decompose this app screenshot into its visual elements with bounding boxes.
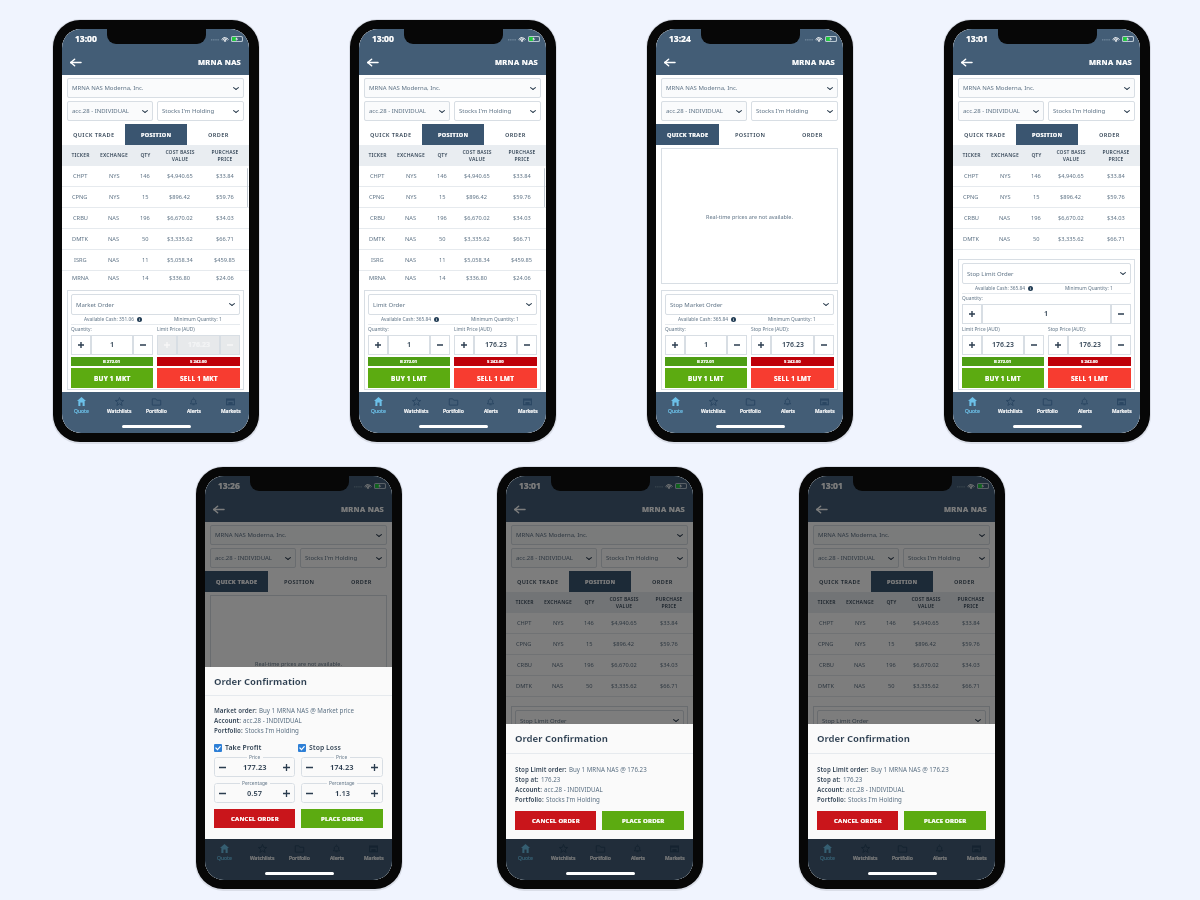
button[interactable]: Increase bbox=[300, 782, 320, 802]
button[interactable]: Increase Percentage bbox=[278, 783, 295, 803]
button[interactable]: Increase Percentage bbox=[366, 783, 383, 803]
button[interactable]: CANCEL ORDER bbox=[515, 811, 596, 830]
button[interactable]: Stocks I'm Holding bbox=[157, 101, 244, 121]
button[interactable]: CHPT bbox=[953, 166, 1140, 186]
button[interactable]: SELL 1 LMT bbox=[751, 368, 834, 388]
button[interactable]: CPNG bbox=[359, 187, 546, 207]
button[interactable]: CANCEL ORDER bbox=[817, 811, 898, 830]
button[interactable]: PLACE ORDER bbox=[602, 811, 684, 830]
button[interactable]: Watchlists bbox=[100, 392, 138, 433]
button[interactable]: Stocks I'm Holding bbox=[454, 101, 541, 121]
button[interactable]: MRNA NAS Moderna, Inc. bbox=[661, 78, 838, 98]
button[interactable]: PLACE ORDER bbox=[904, 811, 986, 830]
button[interactable]: POSITION bbox=[125, 124, 187, 145]
button[interactable]: MRNA NAS Moderna, Inc. bbox=[364, 78, 541, 98]
button[interactable]: Stop Limit Order bbox=[962, 263, 1131, 284]
button[interactable]: Decrease bbox=[1024, 335, 1044, 355]
button[interactable]: CPNG bbox=[62, 187, 249, 207]
button[interactable]: DMTK bbox=[808, 676, 995, 696]
button[interactable]: Alerts bbox=[318, 839, 355, 880]
button[interactable]: BUY 1 LMT bbox=[665, 368, 747, 388]
button[interactable]: POSITION bbox=[1016, 124, 1078, 145]
button[interactable]: CRBU bbox=[808, 655, 995, 675]
button[interactable]: Available cash info bbox=[581, 733, 586, 738]
button[interactable]: acc.28 - INDIVIDUAL bbox=[511, 548, 597, 568]
button[interactable]: Back bbox=[957, 53, 975, 71]
button[interactable]: CPNG bbox=[506, 634, 693, 654]
button[interactable]: acc.28 - INDIVIDUAL bbox=[210, 548, 296, 568]
button[interactable]: PLACE ORDER bbox=[301, 809, 383, 828]
button[interactable]: ORDER bbox=[631, 571, 693, 592]
button[interactable]: Back bbox=[812, 500, 830, 518]
button[interactable]: Increase bbox=[962, 335, 982, 355]
button[interactable]: Stop Limit Order bbox=[817, 710, 986, 731]
button[interactable]: Decrease bbox=[276, 782, 296, 802]
button[interactable]: QUICK TRADE bbox=[808, 571, 871, 592]
button[interactable]: ORDER bbox=[781, 124, 843, 145]
button[interactable]: Portfolio bbox=[1029, 392, 1066, 433]
button[interactable]: Increase bbox=[903, 782, 923, 802]
button[interactable]: MRNA NAS Moderna, Inc. bbox=[958, 78, 1135, 98]
button[interactable]: Decrease bbox=[517, 335, 537, 355]
button[interactable]: Increase bbox=[665, 335, 685, 355]
button[interactable]: CHPT bbox=[808, 613, 995, 633]
button[interactable]: Stop Loss bbox=[298, 743, 383, 752]
button[interactable]: Alerts bbox=[921, 839, 958, 880]
button[interactable]: SELL 1 LMT bbox=[1048, 368, 1131, 388]
button[interactable]: MRNA NAS Moderna, Inc. bbox=[210, 525, 387, 545]
button[interactable]: SELL 1 LMT bbox=[903, 815, 986, 835]
button[interactable]: Markets bbox=[656, 839, 693, 880]
button[interactable]: CHPT bbox=[359, 166, 546, 186]
button[interactable]: POSITION bbox=[719, 124, 781, 145]
button[interactable]: CRBU bbox=[359, 208, 546, 228]
button[interactable]: POSITION bbox=[569, 571, 631, 592]
button[interactable]: Decrease Price bbox=[301, 757, 318, 777]
button[interactable]: DMTK bbox=[506, 676, 693, 696]
button[interactable]: Markets bbox=[958, 839, 995, 880]
button[interactable]: Decrease bbox=[430, 335, 450, 355]
button[interactable]: Stocks I'm Holding bbox=[601, 548, 688, 568]
button[interactable]: Increase bbox=[368, 335, 388, 355]
button[interactable]: ISRG bbox=[359, 250, 546, 270]
button[interactable]: Alerts bbox=[769, 392, 806, 433]
button[interactable]: Portfolio bbox=[281, 839, 318, 880]
button[interactable]: CRBU bbox=[953, 208, 1140, 228]
button[interactable]: Increase bbox=[817, 751, 837, 771]
button[interactable]: Decrease Percentage bbox=[214, 783, 231, 803]
button[interactable]: Decrease bbox=[133, 335, 153, 355]
button[interactable]: QUICK TRADE bbox=[656, 124, 719, 145]
button[interactable]: Available cash info bbox=[137, 317, 142, 322]
button[interactable]: BUY 1 MKT bbox=[214, 815, 296, 835]
button[interactable]: Markets bbox=[1103, 392, 1140, 433]
button[interactable]: ORDER bbox=[933, 571, 995, 592]
button[interactable]: ORDER bbox=[484, 124, 546, 145]
button[interactable]: Watchlists bbox=[397, 392, 435, 433]
button[interactable]: Back bbox=[363, 53, 381, 71]
button[interactable]: ORDER bbox=[1078, 124, 1140, 145]
button[interactable]: MRNA bbox=[359, 271, 546, 284]
button[interactable]: Portfolio bbox=[582, 839, 619, 880]
button[interactable]: Decrease Percentage bbox=[301, 783, 318, 803]
button[interactable]: Increase bbox=[214, 782, 234, 802]
button[interactable]: acc.28 - INDIVIDUAL bbox=[813, 548, 899, 568]
button[interactable]: Markets bbox=[355, 839, 392, 880]
button[interactable]: CPNG bbox=[808, 634, 995, 654]
button[interactable]: Available cash info bbox=[434, 317, 439, 322]
button[interactable]: acc.28 - INDIVIDUAL bbox=[364, 101, 450, 121]
button[interactable]: Watchlists bbox=[694, 392, 732, 433]
button[interactable]: CHPT bbox=[62, 166, 249, 186]
button[interactable]: Watchlists bbox=[846, 839, 884, 880]
button[interactable]: Limit Order bbox=[368, 294, 537, 315]
button[interactable]: Markets bbox=[509, 392, 546, 433]
button[interactable]: Available cash info bbox=[280, 764, 285, 769]
button[interactable]: BUY 1 LMT bbox=[962, 368, 1044, 388]
button[interactable]: SELL 1 MKT bbox=[157, 368, 240, 388]
button[interactable]: acc.28 - INDIVIDUAL bbox=[661, 101, 747, 121]
button[interactable]: Watchlists bbox=[544, 839, 582, 880]
button[interactable]: Market Order bbox=[214, 741, 383, 762]
button[interactable]: Watchlists bbox=[243, 839, 281, 880]
button[interactable]: Quote bbox=[808, 839, 846, 880]
button[interactable]: Increase bbox=[515, 782, 535, 802]
button[interactable]: Available cash info bbox=[731, 317, 736, 322]
